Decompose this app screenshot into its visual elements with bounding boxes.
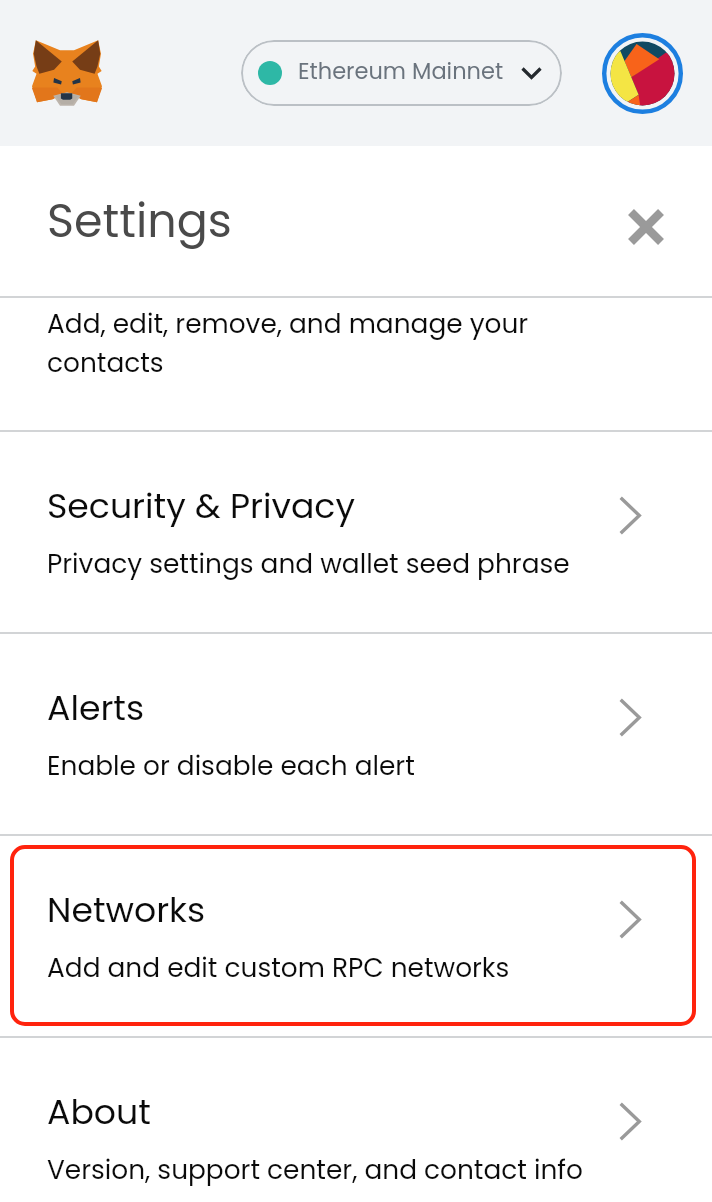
staticText: Networks xyxy=(47,886,206,935)
staticText: Add and edit custom RPC networks xyxy=(47,949,510,986)
button[interactable]: Ethereum Mainnet xyxy=(241,40,562,106)
staticText: Version, support center, and contact inf… xyxy=(47,1151,583,1188)
button[interactable]: Account xyxy=(602,33,683,114)
button[interactable]: Add, edit, remove, and manage your conta… xyxy=(0,298,712,430)
staticText: Ethereum Mainnet xyxy=(298,55,504,86)
staticText: Privacy settings and wallet seed phrase xyxy=(47,545,570,582)
staticText: Settings xyxy=(47,189,232,253)
button[interactable]: Close xyxy=(613,194,679,260)
staticText: Security & Privacy xyxy=(47,482,355,531)
button[interactable]: About xyxy=(0,1038,712,1202)
button[interactable]: Alerts xyxy=(0,634,712,834)
staticText: Alerts xyxy=(47,684,145,733)
button[interactable]: Networks xyxy=(0,836,712,1036)
staticText: About xyxy=(47,1088,151,1137)
staticText: Add, edit, remove, and manage your conta… xyxy=(47,305,547,381)
staticText: Enable or disable each alert xyxy=(47,747,415,784)
button[interactable]: Security & Privacy xyxy=(0,432,712,632)
